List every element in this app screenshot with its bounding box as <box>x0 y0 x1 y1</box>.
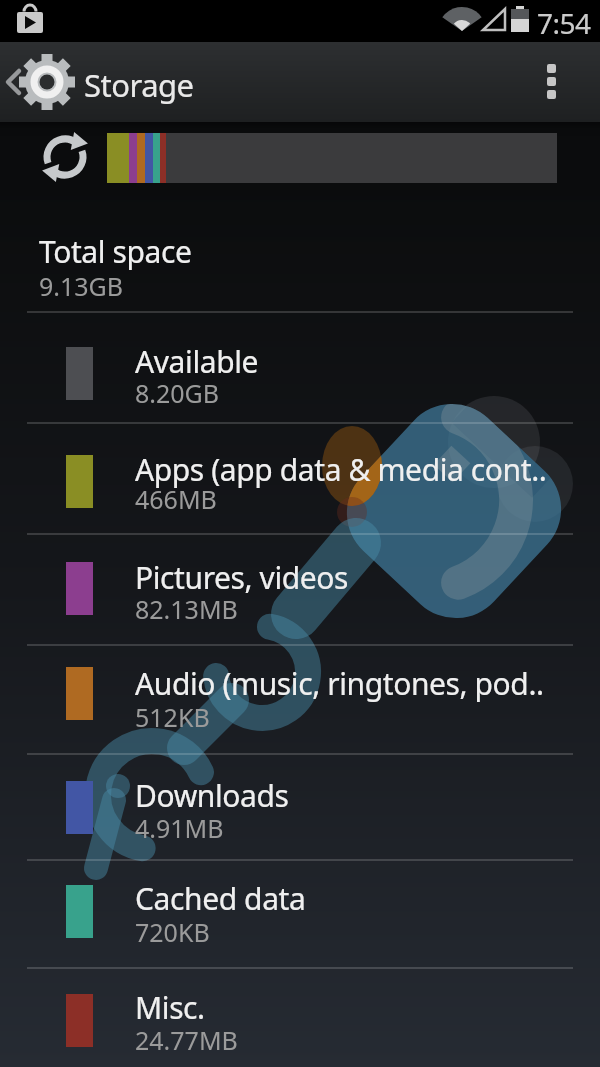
button[interactable]: Downloads <box>0 755 600 859</box>
staticText: Audio (music, ringtones, pod.. <box>135 663 595 704</box>
staticText: 4.91MB <box>135 811 224 845</box>
staticText: Storage <box>84 64 194 106</box>
staticText: 9.13GB <box>39 269 124 303</box>
button[interactable]: Cached data <box>0 861 600 967</box>
staticText: 466MB <box>135 482 217 516</box>
staticText: Downloads <box>135 775 595 816</box>
staticText: 720KB <box>135 915 210 949</box>
button[interactable] <box>0 42 80 122</box>
button[interactable] <box>38 128 94 186</box>
button[interactable]: Apps (app data & media cont.. <box>0 424 600 533</box>
button[interactable]: Total space <box>0 215 600 311</box>
staticText: Pictures, videos <box>135 557 595 598</box>
staticText: 512KB <box>135 700 210 734</box>
button[interactable]: Available <box>0 313 600 422</box>
button[interactable]: Pictures, videos <box>0 535 600 644</box>
staticText: Available <box>135 341 595 382</box>
button[interactable]: Audio (music, ringtones, pod.. <box>0 646 600 753</box>
staticText: Apps (app data & media cont.. <box>135 449 595 490</box>
staticText: Misc. <box>135 987 595 1028</box>
staticText: 82.13MB <box>135 592 238 626</box>
staticText: Cached data <box>135 878 595 919</box>
staticText: 24.77MB <box>135 1023 238 1057</box>
button[interactable] <box>535 52 575 112</box>
button[interactable]: Misc. <box>0 969 600 1067</box>
staticText: 8.20GB <box>135 376 220 410</box>
staticText: 7:54 <box>537 4 591 42</box>
staticText: Total space <box>39 231 192 272</box>
